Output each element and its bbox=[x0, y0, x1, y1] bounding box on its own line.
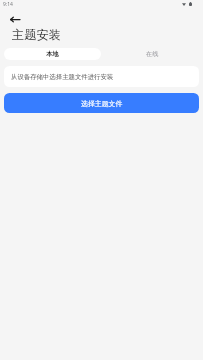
button[interactable]: 本地 bbox=[4, 48, 101, 60]
staticText: 在线 bbox=[146, 50, 159, 58]
staticText: 选择主题文件 bbox=[81, 99, 123, 108]
button[interactable]: Back bbox=[3, 8, 26, 31]
button[interactable]: 在线 bbox=[101, 48, 199, 60]
staticText: 主题安装 bbox=[12, 27, 61, 42]
staticText: 从设备存储中选择主题文件进行安装 bbox=[11, 73, 114, 81]
staticText: 本地 bbox=[46, 50, 59, 58]
button[interactable]: 选择主题文件 bbox=[4, 93, 199, 113]
staticText: 9:14 bbox=[3, 1, 13, 8]
